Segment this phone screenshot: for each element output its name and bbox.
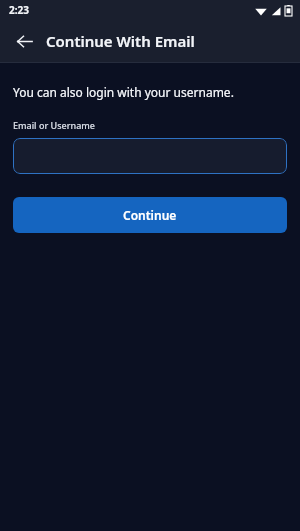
button[interactable]: Back: [8, 25, 40, 57]
staticText: Continue With Email: [46, 31, 195, 51]
button[interactable]: Continue: [13, 197, 287, 233]
staticText: Continue: [123, 207, 177, 223]
staticText: 2:23: [9, 3, 29, 17]
button[interactable]: Email or Username input: [13, 138, 287, 174]
staticText: You can also login with your username.: [13, 84, 234, 100]
staticText: Email or Username: [13, 119, 95, 131]
